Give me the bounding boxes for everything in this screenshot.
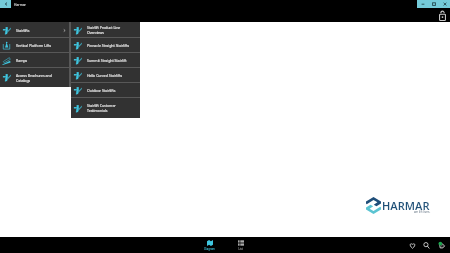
staticText: we lift lives.	[414, 210, 431, 214]
staticText: Access Brochures and Catalogs	[16, 73, 52, 83]
button[interactable]: Stairlifts	[0, 22, 69, 38]
staticText: Ramps	[16, 58, 28, 63]
staticText: Harmar	[14, 2, 26, 6]
staticText: Outdoor Stairlifts	[87, 88, 116, 93]
button[interactable]: Helix Curved Stairlifts	[71, 68, 140, 83]
staticText: Helix Curved Stairlifts	[87, 73, 123, 78]
staticText: Pinnacle Straight Stairlifts	[87, 43, 130, 48]
button[interactable]: Diagram	[198, 237, 221, 253]
button[interactable]: Back	[0, 0, 11, 8]
button[interactable]: Search	[420, 237, 433, 253]
button[interactable]: Outdoor Stairlifts	[71, 83, 140, 98]
staticText: Summit Straight Stairlift	[87, 58, 127, 63]
staticText: List	[238, 247, 243, 251]
button[interactable]: Stairlift Customer Testimonials	[71, 98, 140, 118]
button[interactable]: Ramps	[0, 53, 69, 68]
button[interactable]: Access Brochures and Catalogs	[0, 68, 69, 87]
button[interactable]: Summit Straight Stairlift	[71, 53, 140, 68]
button[interactable]: Maximize	[428, 0, 439, 8]
button[interactable]: Tags	[435, 237, 448, 253]
staticText: HARMAR	[382, 198, 430, 213]
staticText: Vertical Platform Lifts	[16, 43, 52, 48]
button[interactable]: Minimize	[417, 0, 428, 8]
button[interactable]: Stairlift Product Line Overviews	[71, 22, 140, 38]
button[interactable]: Pinnacle Straight Stairlifts	[71, 38, 140, 53]
button[interactable]: Close	[439, 0, 450, 8]
button[interactable]: Favorites	[406, 237, 419, 253]
button[interactable]: Lock	[437, 9, 448, 21]
button[interactable]: Vertical Platform Lifts	[0, 38, 69, 53]
staticText: Stairlift Product Line Overviews	[87, 25, 121, 35]
staticText: Stairlift Customer Testimonials	[87, 103, 116, 113]
staticText: Diagram	[204, 247, 215, 251]
button[interactable]: List	[229, 237, 252, 253]
staticText: Stairlifts	[16, 28, 30, 33]
